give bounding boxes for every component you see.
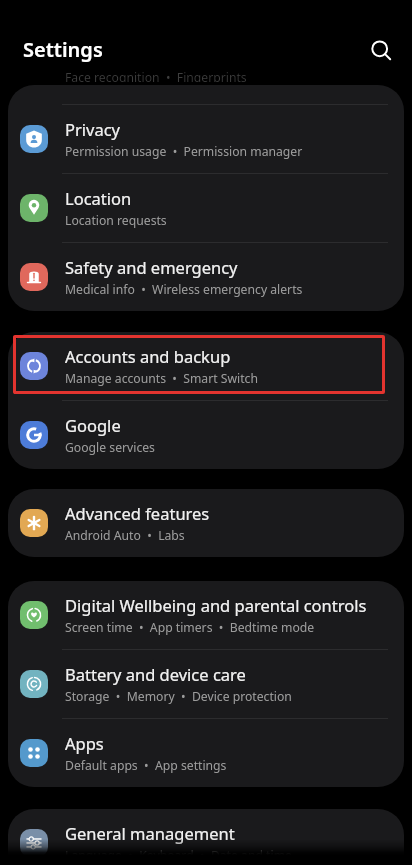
- button[interactable]: Privacy: [8, 105, 404, 174]
- button[interactable]: Accounts and backup: [8, 332, 404, 401]
- staticText: Face recognition • Fingerprints: [65, 72, 247, 82]
- staticText: Screen time • App timers • Bedtime mode: [65, 619, 315, 636]
- button[interactable]: Apps: [8, 719, 404, 787]
- button[interactable]: Search: [363, 32, 403, 72]
- staticText: Language • Keyboard • Date and time: [65, 847, 292, 864]
- staticText: Battery and device care: [65, 663, 246, 685]
- staticText: Advanced features: [65, 502, 210, 524]
- staticText: Location requests: [65, 212, 167, 229]
- staticText: Privacy: [65, 118, 121, 140]
- staticText: General management: [65, 822, 235, 844]
- staticText: Accounts and backup: [65, 345, 231, 367]
- button[interactable]: Google: [8, 401, 404, 469]
- staticText: Android Auto • Labs: [65, 527, 185, 544]
- staticText: Safety and emergency: [65, 256, 238, 278]
- staticText: Medical info • Wireless emergency alerts: [65, 281, 303, 298]
- button[interactable]: General management: [8, 809, 404, 865]
- staticText: Digital Wellbeing and parental controls: [65, 594, 367, 616]
- button[interactable]: Battery and device care: [8, 650, 404, 719]
- staticText: Location: [65, 187, 132, 209]
- staticText: Storage • Memory • Device protection: [65, 688, 292, 705]
- staticText: Apps: [65, 732, 104, 754]
- button[interactable]: Digital Wellbeing and parental controls: [8, 581, 404, 650]
- button[interactable]: Location: [8, 174, 404, 243]
- button[interactable]: Advanced features: [8, 489, 404, 557]
- staticText: Manage accounts • Smart Switch: [65, 370, 258, 387]
- staticText: Default apps • App settings: [65, 757, 227, 774]
- staticText: Settings: [23, 36, 103, 63]
- staticText: Permission usage • Permission manager: [65, 143, 303, 160]
- button[interactable]: Safety and emergency: [8, 243, 404, 311]
- staticText: Google: [65, 414, 121, 436]
- staticText: Google services: [65, 439, 155, 456]
